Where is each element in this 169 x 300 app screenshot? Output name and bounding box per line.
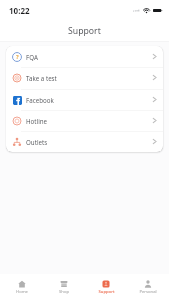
staticText: Facebook bbox=[26, 96, 54, 104]
button[interactable]: Personal bbox=[127, 275, 169, 299]
staticText: Hotline bbox=[26, 117, 48, 125]
button[interactable]: Home bbox=[0, 275, 43, 299]
button[interactable]: Hotline bbox=[6, 110, 163, 131]
staticText: FQA bbox=[26, 53, 38, 61]
staticText: Outlets bbox=[26, 138, 48, 146]
button[interactable]: Support bbox=[85, 275, 127, 299]
staticText: Take a test bbox=[26, 74, 57, 82]
staticText: Support bbox=[68, 25, 101, 37]
staticText: 10:22 bbox=[9, 5, 30, 16]
staticText: Home bbox=[16, 289, 28, 295]
button[interactable]: Facebook bbox=[6, 89, 163, 110]
button[interactable]: ? bbox=[6, 46, 163, 67]
staticText: Shop bbox=[59, 289, 69, 295]
button[interactable]: Take a test bbox=[6, 67, 163, 88]
button[interactable]: Outlets bbox=[6, 131, 163, 152]
staticText: Personal bbox=[139, 289, 157, 295]
staticText: Support bbox=[98, 289, 115, 295]
button[interactable]: Shop bbox=[43, 275, 85, 299]
staticText: ? bbox=[16, 53, 19, 61]
